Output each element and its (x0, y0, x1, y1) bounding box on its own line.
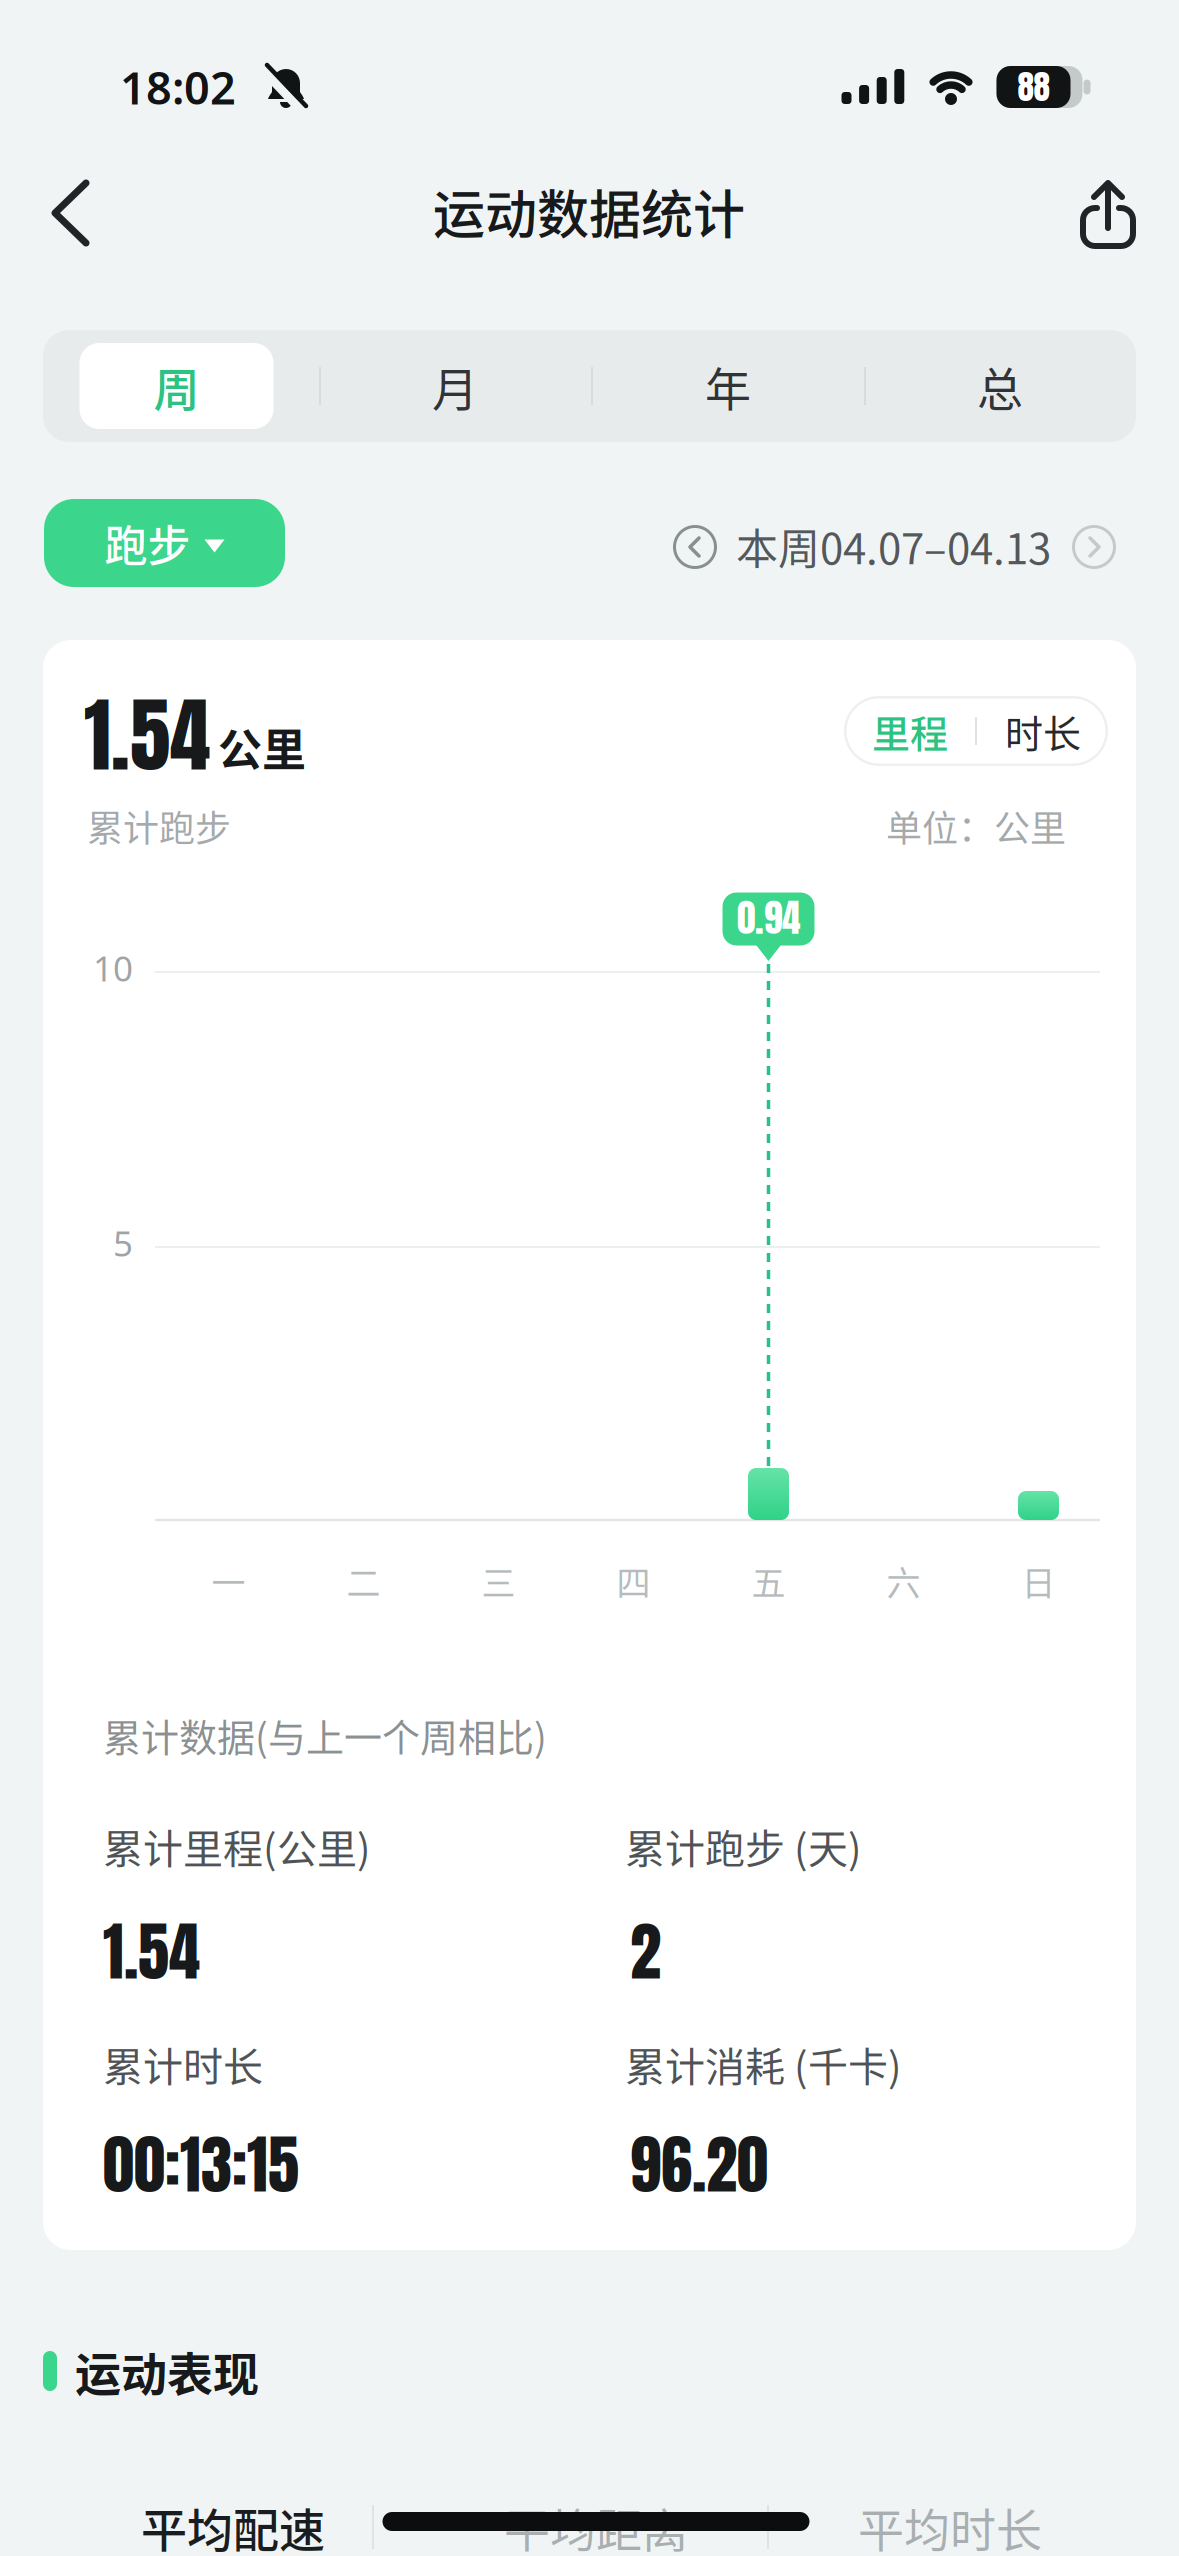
staticText: 96.20 (630, 2118, 768, 2212)
staticText: 累计时长 (103, 2035, 263, 2093)
button[interactable]: 时长 (983, 696, 1103, 766)
button[interactable]: 平均配速 (68, 2487, 398, 2556)
staticText: 运动数据统计 (433, 173, 745, 249)
staticText: 累计消耗 (千卡) (625, 2035, 902, 2093)
button[interactable]: 跑步 (44, 499, 285, 587)
button[interactable]: 下一周 (1068, 521, 1120, 573)
staticText: 0.94 (737, 890, 800, 946)
staticText: 累计里程(公里) (103, 1817, 371, 1875)
staticText: 日 (1021, 1556, 1055, 1606)
staticText: 里程 (872, 703, 948, 758)
button[interactable]: 平均距离 (431, 2487, 761, 2556)
staticText: 累计跑步 (天) (625, 1817, 862, 1875)
staticText: 5 (113, 1219, 133, 1267)
staticText: 平均时长 (858, 2494, 1042, 2556)
staticText: 三 (481, 1556, 515, 1606)
staticText: 五 (751, 1556, 785, 1606)
button[interactable]: 总 (880, 343, 1120, 429)
button[interactable]: 月 (335, 343, 575, 429)
staticText: 10 (93, 944, 133, 992)
staticText: 累计跑步 (87, 800, 231, 852)
staticText: 四 (616, 1556, 650, 1606)
staticText: 本周04.07–04.13 (736, 516, 1051, 576)
button[interactable]: 里程 (850, 696, 970, 766)
staticText: 二 (346, 1556, 380, 1606)
staticText: 六 (886, 1556, 920, 1606)
staticText: 00:13:15 (103, 2118, 299, 2212)
staticText: 平均配速 (141, 2494, 325, 2556)
staticText: 年 (705, 353, 751, 419)
button[interactable]: 分享 (1075, 176, 1141, 252)
staticText: 2 (630, 1905, 661, 1999)
button[interactable]: 上一周 (669, 521, 721, 573)
staticText: 月 (432, 353, 478, 419)
button[interactable]: 返回 (42, 175, 106, 251)
staticText: 公里 (218, 715, 306, 779)
staticText: 总 (977, 353, 1023, 419)
button[interactable]: 周 (79, 343, 273, 429)
staticText: 累计数据(与上一个周相比) (103, 1707, 547, 1762)
staticText: 时长 (1005, 703, 1081, 758)
staticText: 1.54 (84, 674, 210, 796)
staticText: 1.54 (103, 1905, 200, 1999)
button[interactable]: 年 (608, 343, 848, 429)
staticText: 运动表现 (75, 2338, 259, 2404)
staticText: 平均距离 (504, 2494, 688, 2556)
staticText: 周 (153, 353, 199, 419)
button[interactable]: 平均时长 (785, 2487, 1115, 2556)
staticText: 18:02 (120, 56, 236, 118)
staticText: 88 (1017, 62, 1049, 112)
staticText: 一 (211, 1556, 245, 1606)
staticText: 单位：公里 (886, 800, 1066, 852)
staticText: 跑步 (104, 512, 190, 574)
